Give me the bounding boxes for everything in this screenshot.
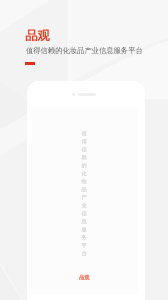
button[interactable]: 品观 App 预览 [27, 81, 145, 300]
staticText: 值得信赖的化妆品产业信息服务平台 [26, 46, 143, 55]
staticText: 值 得 信 赖 的 化 妆 品 产 业 信 息 服 务 平 台 [81, 130, 87, 256]
staticText: 品观 [25, 28, 51, 43]
staticText: 品观 [79, 274, 90, 281]
